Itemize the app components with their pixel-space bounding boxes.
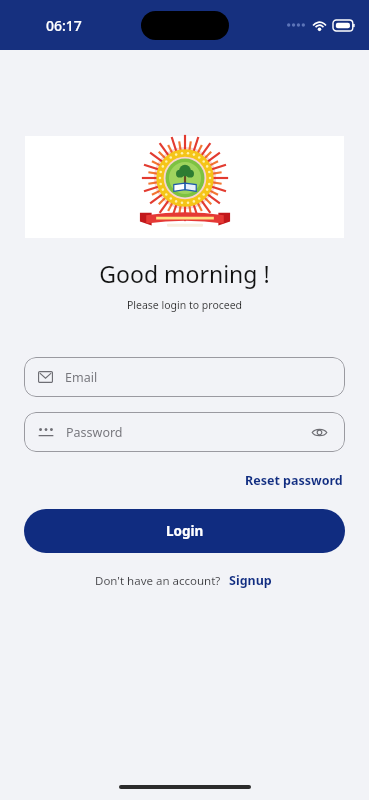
staticText: Login [166, 522, 204, 540]
staticText: Email [65, 369, 331, 386]
button[interactable]: Reset password [243, 469, 345, 492]
staticText: Please login to proceed [0, 298, 369, 312]
staticText: Reset password [245, 472, 343, 489]
button[interactable]: Signup [227, 569, 274, 592]
staticText: Good morning ! [0, 258, 369, 289]
other: Email [38, 371, 53, 383]
button[interactable]: Login [24, 509, 345, 553]
button[interactable]: Show password [307, 420, 331, 444]
staticText: Don't have an account? [95, 573, 221, 589]
button[interactable]: Email [24, 357, 345, 397]
button[interactable]: Password [24, 412, 345, 452]
other: Password [38, 426, 54, 438]
staticText: Password [66, 424, 307, 441]
staticText: 06:17 [46, 16, 82, 35]
staticText: Signup [229, 572, 272, 589]
